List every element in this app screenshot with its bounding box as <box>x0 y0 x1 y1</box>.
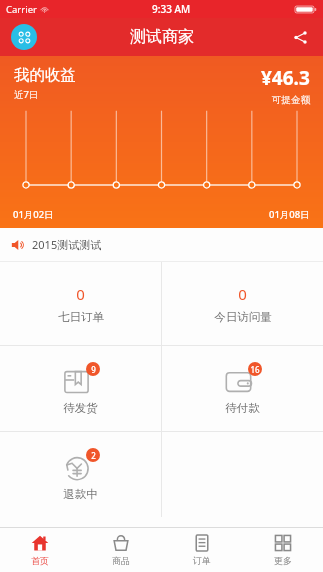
staticText: 近7日 <box>14 88 39 101</box>
button[interactable]: 2 <box>0 432 161 517</box>
staticText: 首页 <box>31 555 49 566</box>
button[interactable]: 商品 <box>80 527 161 572</box>
staticText: 我的收益 <box>14 65 76 85</box>
button[interactable]: Share <box>285 22 315 52</box>
staticText: 待发货 <box>63 401 98 415</box>
button[interactable]: 更多 <box>242 527 323 572</box>
staticText: 9:33 AM <box>152 2 191 16</box>
button[interactable]: 0 <box>0 262 161 345</box>
staticText: 更多 <box>274 555 292 566</box>
staticText: 订单 <box>193 555 211 566</box>
staticText: 2015测试测试 <box>32 237 102 252</box>
button[interactable]: 16 <box>162 346 323 431</box>
button[interactable]: 0 <box>162 262 323 345</box>
staticText: 退款中 <box>63 487 98 501</box>
staticText: 01月08日 <box>269 208 310 221</box>
button[interactable]: 首页 <box>0 527 80 572</box>
staticText: 16 <box>250 364 260 375</box>
staticText: 01月02日 <box>13 208 54 221</box>
button[interactable]: 订单 <box>161 527 242 572</box>
staticText: 2 <box>91 450 96 461</box>
button[interactable]: 9 <box>0 346 161 431</box>
staticText: 七日订单 <box>58 310 104 324</box>
staticText: ¥46.3 <box>261 65 310 91</box>
staticText: 测试商家 <box>130 27 194 47</box>
staticText: 商品 <box>112 555 130 566</box>
staticText: Carrier <box>6 3 37 16</box>
staticText: 9 <box>91 364 96 375</box>
staticText: 待付款 <box>225 401 260 415</box>
staticText: 0 <box>238 284 247 304</box>
button[interactable]: Profile avatar <box>11 24 37 50</box>
staticText: 今日访问量 <box>214 310 272 324</box>
staticText: 0 <box>76 284 85 304</box>
button[interactable]: 2015测试测试 <box>0 228 323 261</box>
staticText: 可提金额 <box>272 94 310 106</box>
